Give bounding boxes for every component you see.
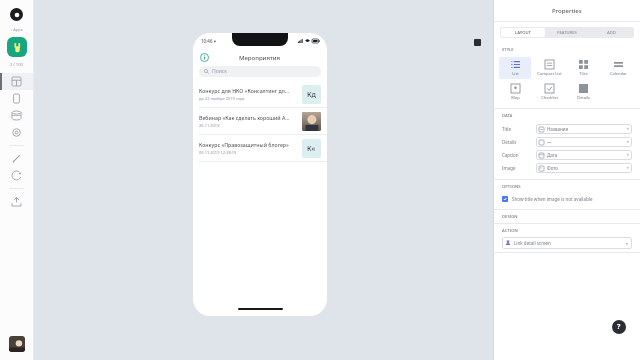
staticText: Caption — [502, 152, 536, 158]
button[interactable]: Component — [474, 39, 481, 46]
button[interactable]: Конкурс «Правозащитный блогер» — [193, 135, 327, 161]
staticText: ▾ — [627, 140, 629, 144]
button[interactable]: Checklist — [533, 81, 565, 103]
staticText: 10:46 ▾ — [201, 38, 216, 44]
staticText: Кд — [307, 90, 316, 100]
staticText: Properties — [552, 7, 582, 15]
button[interactable]: Название — [536, 124, 632, 134]
button[interactable]: Screens — [0, 73, 33, 90]
staticText: Вебинар «Как сделать хороший А… — [199, 114, 290, 121]
staticText: ADD — [607, 30, 616, 36]
staticText: ? — [617, 322, 621, 332]
staticText: Конкурс «Правозащитный блогер» — [199, 141, 289, 148]
staticText: 05.11.2019 12:28:19 — [199, 150, 237, 155]
button[interactable]: Дата — [536, 150, 632, 160]
staticText: Title — [502, 126, 536, 132]
button[interactable]: Publish — [0, 193, 33, 210]
staticText: до 22 ноября 2019 года — [199, 96, 245, 101]
staticText: 2 / 100 — [10, 62, 23, 67]
staticText: Конкурс для НКО «Консалтинг дл… — [199, 87, 290, 94]
button[interactable]: Sync — [0, 167, 33, 184]
staticText: Details — [577, 95, 590, 100]
staticText: К« — [307, 144, 316, 154]
button[interactable]: Фото — [536, 163, 632, 173]
staticText: ‹ Apps — [11, 27, 23, 32]
staticText: Calendar — [610, 71, 627, 76]
button[interactable]: Compact List — [533, 57, 565, 79]
staticText: Фото — [547, 165, 559, 171]
button[interactable]: Data — [0, 107, 33, 124]
staticText: Checklist — [541, 95, 558, 100]
button[interactable]: List — [499, 57, 531, 79]
button[interactable]: FEATURES — [545, 28, 589, 37]
button[interactable]: — — [536, 137, 632, 147]
staticText: Map — [511, 95, 520, 100]
button[interactable]: Logo — [10, 8, 23, 21]
staticText: ▾ — [626, 241, 629, 246]
staticText: Дата — [547, 152, 558, 158]
staticText: FEATURES — [557, 30, 577, 36]
staticText: ▾ — [627, 127, 629, 131]
staticText: — — [547, 139, 552, 145]
staticText: Link detail screen — [514, 240, 551, 246]
button[interactable]: App icon — [7, 37, 27, 57]
button[interactable]: Account — [9, 336, 25, 352]
staticText: LAYOUT — [515, 30, 531, 36]
button[interactable]: Settings — [0, 124, 33, 141]
staticText: 26.11.2019 — [199, 123, 220, 128]
button[interactable]: Map — [499, 81, 531, 103]
button[interactable]: Конкурс для НКО «Консалтинг дл… — [193, 81, 327, 107]
button[interactable]: Вебинар «Как сделать хороший А… — [193, 108, 327, 134]
staticText: ▾ — [627, 166, 629, 170]
button[interactable]: Show title when image is not available — [502, 193, 632, 204]
button[interactable]: Tiles — [567, 57, 600, 79]
staticText: List — [512, 71, 519, 76]
button[interactable]: Поиск — [199, 66, 321, 77]
staticText: Поиск — [212, 68, 227, 75]
staticText: Details — [502, 139, 536, 145]
staticText: ▾ — [627, 153, 629, 157]
staticText: Show title when image is not available — [512, 196, 593, 202]
button[interactable]: Help — [612, 320, 626, 334]
staticText: STYLE — [502, 47, 514, 53]
staticText: Название — [547, 126, 569, 132]
button[interactable]: Info — [200, 53, 209, 62]
staticText: OPTIONS — [502, 184, 521, 190]
button[interactable]: ADD — [589, 28, 633, 37]
staticText: Compact List — [537, 71, 562, 76]
staticText: Мероприятия — [239, 54, 281, 62]
staticText: DATA — [502, 113, 513, 119]
staticText: Image — [502, 165, 536, 171]
button[interactable]: LAYOUT — [501, 28, 545, 37]
staticText: DESIGN — [502, 214, 518, 220]
button[interactable]: Details — [567, 81, 600, 103]
button[interactable]: Design — [0, 150, 33, 167]
button[interactable]: Calendar — [602, 57, 635, 79]
button[interactable]: Link detail screen — [502, 237, 632, 249]
staticText: ACTION — [502, 228, 518, 234]
staticText: Tiles — [579, 71, 588, 76]
button[interactable]: Pages — [0, 90, 33, 107]
